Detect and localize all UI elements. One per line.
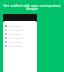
button[interactable]	[3, 24, 37, 28]
button[interactable]	[3, 44, 37, 48]
button[interactable]	[3, 32, 37, 36]
button[interactable]	[3, 36, 37, 40]
button[interactable]	[3, 28, 37, 32]
staticText: Get notified with news on important life…	[2, 3, 62, 11]
button[interactable]	[3, 40, 37, 44]
